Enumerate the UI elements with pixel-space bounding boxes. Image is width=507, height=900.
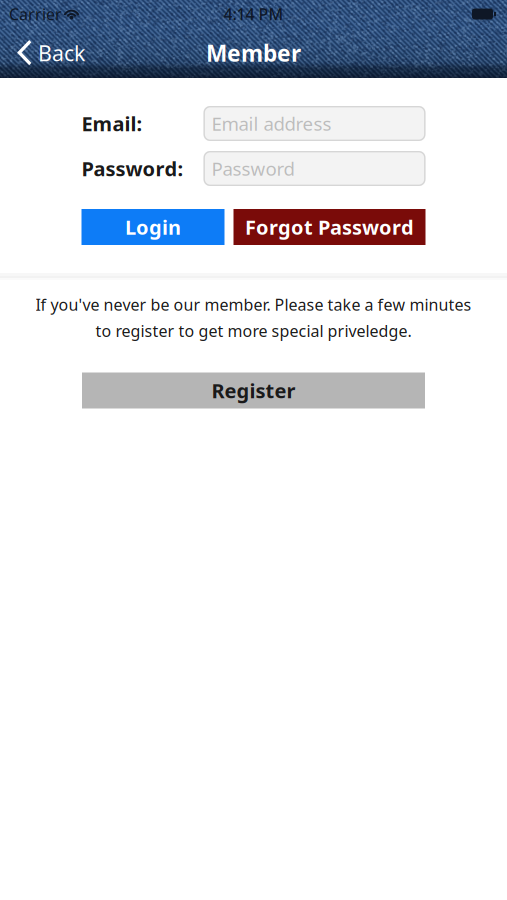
staticText: to register to get more special priveled… [95, 320, 411, 341]
staticText: Password [211, 156, 294, 181]
staticText: Back [38, 39, 85, 67]
staticText: Email address [211, 111, 331, 136]
staticText: Email: [81, 110, 142, 137]
staticText: Register [211, 377, 295, 404]
button[interactable]: Back [0, 31, 95, 75]
staticText: Login [125, 214, 181, 240]
staticText: Forgot Password [245, 214, 414, 240]
staticText: If you've never be our member. Please ta… [35, 294, 471, 315]
button[interactable]: Register [82, 372, 425, 408]
staticText: 4:14 PM [223, 3, 283, 25]
button[interactable]: Login [81, 209, 224, 245]
staticText: Carrier [9, 3, 62, 25]
button[interactable]: Forgot Password [233, 209, 425, 245]
staticText: Password: [81, 155, 183, 182]
staticText: Member [206, 38, 301, 68]
